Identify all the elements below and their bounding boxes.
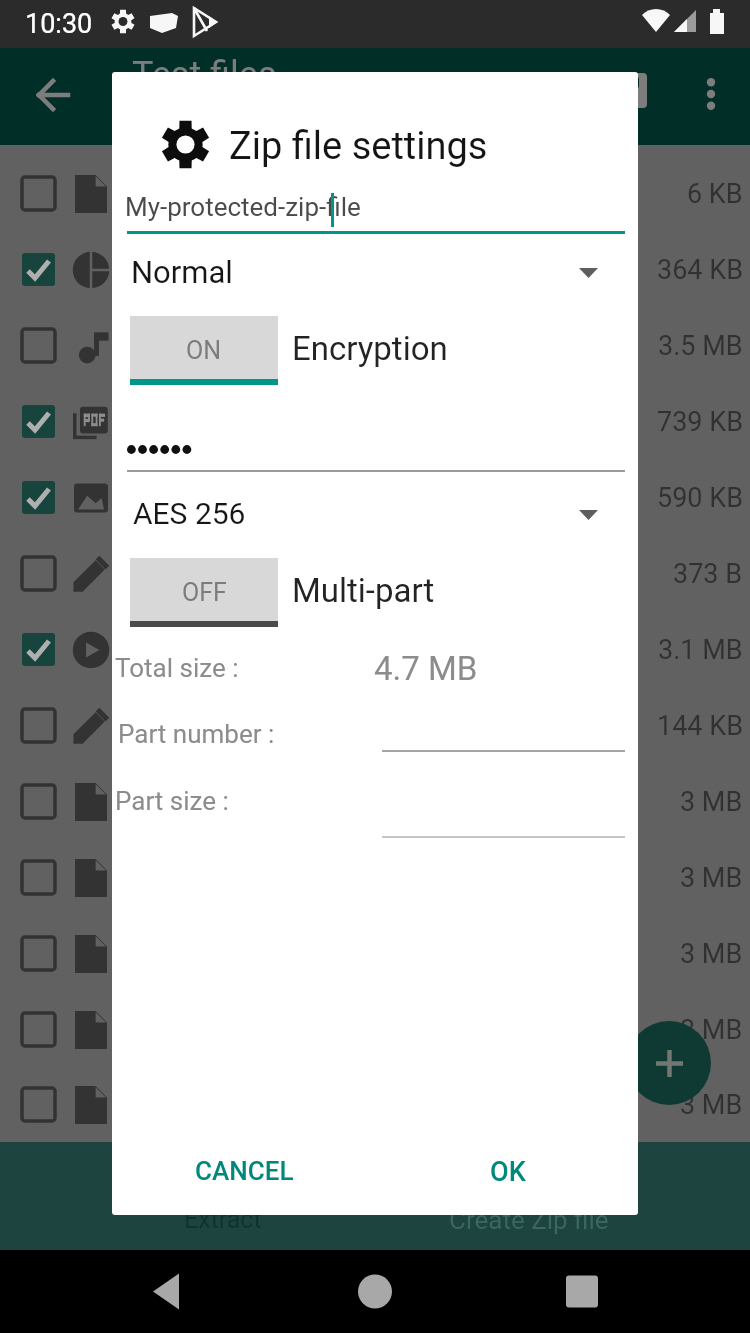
staticText: 3 MB xyxy=(680,786,743,818)
button[interactable]: 739 KB xyxy=(0,384,750,460)
staticText: 590 KB xyxy=(657,482,743,514)
staticText: OFF xyxy=(182,578,227,607)
button[interactable]: 3 MB xyxy=(0,764,750,840)
button[interactable]: 373 B xyxy=(0,536,750,612)
staticText: 3.1 MB xyxy=(658,634,743,666)
staticText: Part number : xyxy=(118,719,275,749)
staticText: 3 MB xyxy=(680,938,743,970)
staticText: OK xyxy=(490,1156,526,1188)
staticText: 6 KB xyxy=(687,178,743,210)
button[interactable] xyxy=(382,749,625,799)
staticText: 3 MB xyxy=(680,1014,743,1046)
staticText: 3.5 MB xyxy=(658,330,743,362)
staticText: 144 KB xyxy=(657,710,743,742)
staticText: Total size : xyxy=(115,653,239,683)
button[interactable]: Back xyxy=(27,67,83,123)
button[interactable]: 3 MB xyxy=(0,916,750,992)
button[interactable]: AES 256 xyxy=(122,486,628,542)
staticText: 3 MB xyxy=(680,1089,743,1121)
button[interactable]: 3 MB xyxy=(0,840,750,916)
button[interactable]: 3.5 MB xyxy=(0,308,750,384)
staticText: 10:30 xyxy=(25,8,93,40)
button[interactable]: 6 KB xyxy=(0,156,750,232)
button[interactable]: 590 KB xyxy=(0,460,750,536)
staticText: 4.7 MB xyxy=(374,649,478,688)
button[interactable]: 3 MB xyxy=(0,992,750,1068)
button[interactable] xyxy=(382,792,625,838)
staticText: 373 B xyxy=(673,558,743,590)
button[interactable]: Normal xyxy=(122,244,628,300)
staticText: Multi-part xyxy=(292,571,435,610)
staticText: Create Zip file xyxy=(449,1205,609,1235)
staticText: AES 256 xyxy=(133,496,246,531)
button[interactable]: CANCEL xyxy=(177,1144,312,1198)
button[interactable]: Add xyxy=(627,1021,711,1105)
button[interactable]: OK xyxy=(472,1144,544,1200)
button[interactable]: 3.1 MB xyxy=(0,612,750,688)
staticText: Part size : xyxy=(115,786,229,816)
staticText: Test files xyxy=(132,54,277,96)
button[interactable]: OFF xyxy=(130,558,278,627)
staticText: Normal xyxy=(131,254,233,290)
button[interactable]: 3 MB xyxy=(0,1068,750,1142)
staticText: Extract xyxy=(184,1205,262,1234)
button[interactable]: Create Zip file xyxy=(379,1142,679,1250)
staticText: Encryption xyxy=(292,329,448,368)
staticText: 739 KB xyxy=(657,406,743,438)
button[interactable]: ON xyxy=(130,316,278,385)
button[interactable]: Extract xyxy=(73,1142,373,1250)
button[interactable]: More options xyxy=(684,67,738,121)
staticText: Zip file settings xyxy=(229,124,488,169)
staticText: 3 MB xyxy=(680,862,743,894)
staticText: 364 KB xyxy=(657,254,743,286)
staticText: CANCEL xyxy=(195,1156,294,1186)
staticText: My-protected-zip-file xyxy=(125,192,361,222)
staticText: ON xyxy=(186,336,222,365)
button[interactable]: 144 KB xyxy=(0,688,750,764)
button[interactable]: Storage xyxy=(611,62,665,116)
button[interactable]: 364 KB xyxy=(0,232,750,308)
